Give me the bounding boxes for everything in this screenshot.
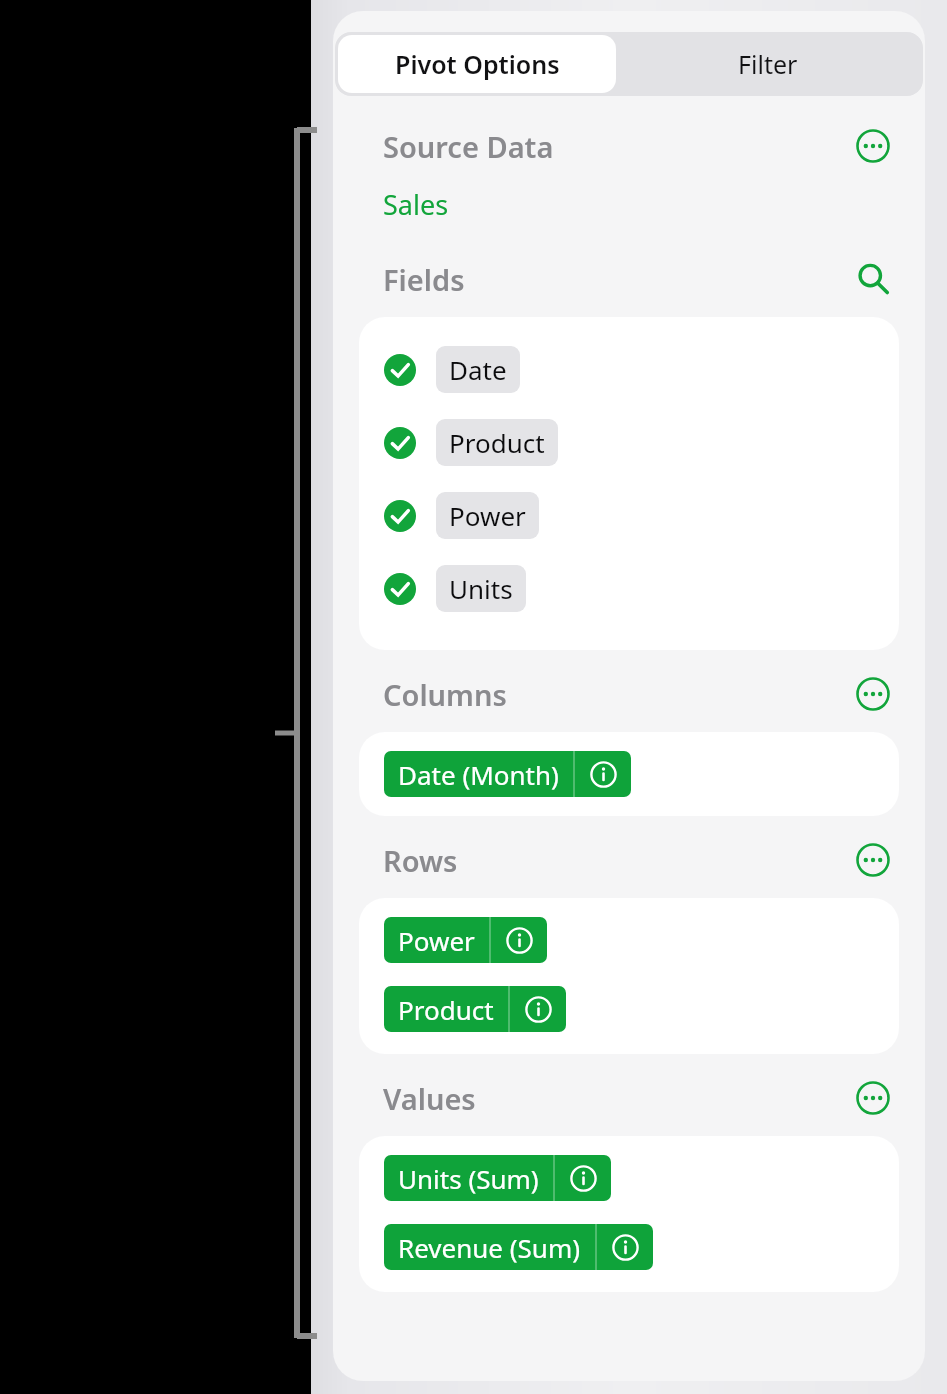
- staticText: Date (Month): [398, 757, 559, 792]
- button[interactable]: Info about Power: [491, 917, 547, 963]
- staticText: Units: [449, 571, 513, 606]
- staticText: Pivot Options: [395, 47, 560, 81]
- staticText: Rows: [383, 841, 458, 880]
- button[interactable]: Info about Revenue (Sum): [597, 1224, 653, 1270]
- button[interactable]: Filter: [616, 35, 920, 93]
- staticText: Sales: [383, 186, 449, 223]
- button[interactable]: Power: [359, 479, 899, 552]
- staticText: Power: [449, 498, 526, 533]
- button[interactable]: Product: [384, 986, 566, 1032]
- button[interactable]: Info about Date (Month): [575, 751, 631, 797]
- button[interactable]: More options for Values: [851, 1076, 895, 1120]
- button[interactable]: Revenue (Sum): [384, 1224, 653, 1270]
- button[interactable]: Info about Product: [510, 986, 566, 1032]
- button[interactable]: Info about Units (Sum): [555, 1155, 611, 1201]
- button[interactable]: Product: [359, 406, 899, 479]
- button[interactable]: Units: [359, 552, 899, 625]
- button[interactable]: Units (Sum): [384, 1155, 611, 1201]
- staticText: Columns: [383, 675, 507, 714]
- staticText: Power: [398, 923, 475, 958]
- button[interactable]: Sales: [333, 172, 925, 229]
- staticText: Product: [398, 992, 494, 1027]
- staticText: Filter: [738, 47, 798, 81]
- button[interactable]: More options for Source Data: [851, 124, 895, 168]
- staticText: Values: [383, 1079, 476, 1118]
- button[interactable]: Power: [384, 917, 547, 963]
- staticText: Product: [449, 425, 545, 460]
- staticText: Units (Sum): [398, 1161, 539, 1196]
- button[interactable]: Date: [359, 333, 899, 406]
- staticText: Source Data: [383, 127, 554, 166]
- button[interactable]: Search fields: [851, 257, 895, 301]
- button[interactable]: Date (Month): [384, 751, 631, 797]
- button[interactable]: More options for Rows: [851, 838, 895, 882]
- staticText: Revenue (Sum): [398, 1230, 581, 1265]
- button[interactable]: More options for Columns: [851, 672, 895, 716]
- button[interactable]: Pivot Options: [338, 35, 616, 93]
- staticText: Date: [449, 352, 507, 387]
- staticText: Fields: [383, 260, 465, 299]
